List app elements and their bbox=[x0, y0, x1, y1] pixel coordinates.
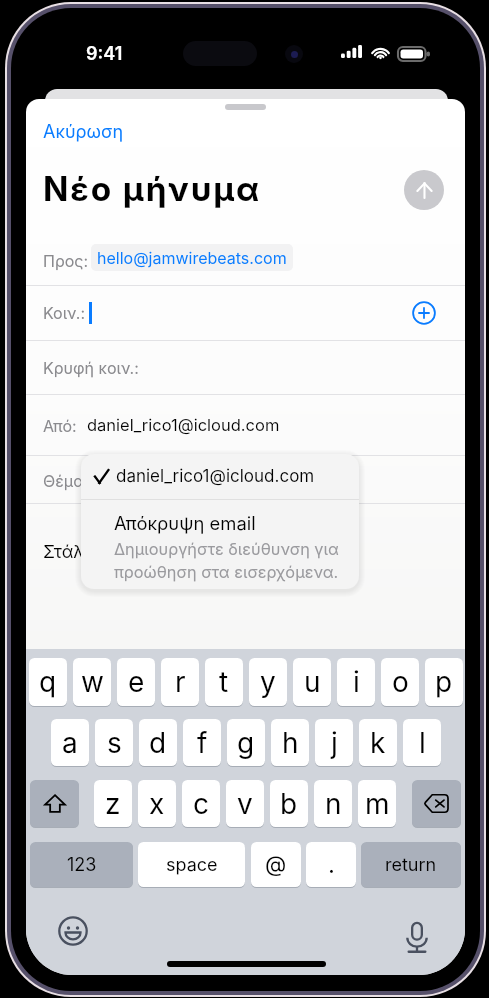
button[interactable]: Από: bbox=[26, 395, 465, 455]
staticText: space bbox=[166, 854, 218, 876]
button[interactable]: j bbox=[315, 719, 353, 766]
staticText: t bbox=[219, 665, 229, 699]
button[interactable]: s bbox=[95, 719, 133, 766]
staticText: j bbox=[331, 726, 338, 760]
staticText: x bbox=[149, 787, 165, 821]
staticText: @ bbox=[265, 851, 287, 878]
button[interactable]: Ακύρωση bbox=[26, 118, 465, 146]
button[interactable]: daniel_rico1@icloud.com bbox=[81, 454, 359, 499]
staticText: d bbox=[149, 726, 167, 760]
staticText: o bbox=[392, 665, 409, 699]
staticText: i bbox=[353, 665, 360, 699]
staticText: daniel_rico1@icloud.com bbox=[87, 415, 280, 435]
staticText: . bbox=[328, 850, 335, 879]
button[interactable]: e bbox=[117, 658, 155, 706]
staticText: k bbox=[370, 726, 386, 760]
button[interactable]: Απόκρυψη email bbox=[81, 500, 359, 589]
button[interactable]: b bbox=[270, 780, 308, 827]
button[interactable]: Κρυφή κοιν.: bbox=[26, 341, 465, 394]
staticText: Απόκρυψη email bbox=[114, 512, 256, 534]
button[interactable]: Υπαγόρευση bbox=[406, 922, 428, 954]
staticText: 9:41 bbox=[86, 43, 123, 65]
button[interactable]: g bbox=[227, 719, 265, 766]
button[interactable]: k bbox=[359, 719, 397, 766]
staticText: daniel_rico1@icloud.com bbox=[116, 466, 315, 487]
button[interactable]: f bbox=[183, 719, 221, 766]
button[interactable]: l bbox=[403, 719, 441, 766]
button[interactable]: return bbox=[361, 842, 461, 887]
button[interactable]: r bbox=[161, 658, 199, 706]
staticText: return bbox=[385, 854, 437, 876]
button[interactable]: Προσθήκη επαφής bbox=[411, 300, 437, 326]
staticText: g bbox=[237, 726, 255, 760]
button[interactable]: w bbox=[73, 658, 111, 706]
staticText: l bbox=[419, 726, 426, 760]
staticText: προώθηση στα εισερχόμενα. bbox=[114, 562, 339, 582]
staticText: hello@jamwirebeats.com bbox=[97, 248, 287, 267]
button[interactable]: x bbox=[138, 780, 176, 827]
staticText: a bbox=[62, 726, 78, 760]
button[interactable]: space bbox=[138, 842, 245, 887]
button[interactable]: u bbox=[293, 658, 331, 706]
staticText: v bbox=[237, 787, 253, 821]
staticText: f bbox=[197, 726, 208, 760]
button[interactable]: o bbox=[381, 658, 419, 706]
button[interactable]: y bbox=[249, 658, 287, 706]
button[interactable]: t bbox=[205, 658, 243, 706]
staticText: m bbox=[365, 787, 390, 821]
button[interactable]: q bbox=[29, 658, 67, 706]
button[interactable]: h bbox=[271, 719, 309, 766]
staticText: n bbox=[325, 787, 342, 821]
staticText: 123 bbox=[67, 854, 97, 876]
button[interactable]: a bbox=[51, 719, 89, 766]
button[interactable]: Αποστολή bbox=[404, 170, 444, 210]
button[interactable]: 123 bbox=[30, 842, 133, 887]
staticText: p bbox=[435, 665, 453, 699]
staticText: q bbox=[39, 665, 57, 699]
staticText: z bbox=[105, 787, 121, 821]
button[interactable]: m bbox=[358, 780, 396, 827]
staticText: e bbox=[128, 665, 145, 699]
staticText: b bbox=[280, 787, 298, 821]
staticText: Στάλθηκε από το iPhone μου bbox=[43, 541, 283, 562]
button[interactable]: Προς: bbox=[26, 236, 465, 285]
button[interactable]: @ bbox=[251, 842, 301, 887]
staticText: Νέο μήνυμα bbox=[43, 169, 262, 209]
staticText: h bbox=[282, 726, 299, 760]
button[interactable]: Διαγραφή bbox=[412, 780, 461, 827]
staticText: s bbox=[107, 726, 122, 760]
staticText: u bbox=[304, 665, 321, 699]
button[interactable]: Κοιν.: bbox=[26, 286, 465, 339]
button[interactable]: d bbox=[139, 719, 177, 766]
button[interactable]: . bbox=[306, 842, 356, 887]
staticText: Ακύρωση bbox=[43, 121, 124, 143]
staticText: Κρυφή κοιν.: bbox=[43, 358, 139, 377]
staticText: Από: bbox=[43, 416, 77, 435]
button[interactable]: z bbox=[94, 780, 132, 827]
staticText: Δημιουργήστε διεύθυνση για bbox=[114, 539, 339, 559]
staticText: y bbox=[260, 665, 276, 699]
staticText: r bbox=[175, 665, 186, 699]
button[interactable]: p bbox=[425, 658, 463, 706]
button[interactable]: Θέμα: bbox=[26, 456, 465, 504]
staticText: c bbox=[193, 787, 209, 821]
staticText: Προς: bbox=[43, 251, 88, 270]
button[interactable]: Emoji bbox=[58, 916, 88, 946]
button[interactable]: i bbox=[337, 658, 375, 706]
button[interactable]: c bbox=[182, 780, 220, 827]
button[interactable]: n bbox=[314, 780, 352, 827]
button[interactable]: Shift bbox=[30, 780, 79, 827]
staticText: Κοιν.: bbox=[43, 303, 86, 322]
staticText: w bbox=[81, 665, 104, 699]
button[interactable]: v bbox=[226, 780, 264, 827]
staticText: Θέμα: bbox=[43, 471, 89, 490]
